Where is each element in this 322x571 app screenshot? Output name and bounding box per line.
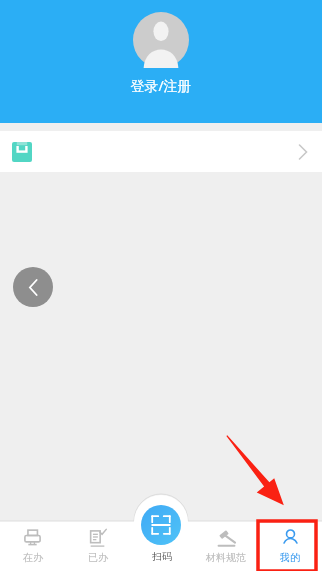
button[interactable]: 扫码 (130, 521, 194, 571)
button[interactable]: 我的 (258, 521, 322, 571)
staticText: 我的 (280, 551, 300, 564)
staticText: 已办 (88, 551, 108, 564)
button[interactable]: 在办 (0, 521, 65, 571)
button[interactable]: 已办 (65, 521, 130, 571)
button[interactable] (0, 131, 322, 172)
button[interactable]: 扫码 Scan (141, 505, 181, 545)
button[interactable]: Back (13, 267, 53, 307)
button[interactable]: 登录/注册 (130, 12, 192, 95)
staticText: 在办 (23, 551, 43, 564)
staticText: 材料规范 (206, 551, 246, 564)
button[interactable]: 材料规范 (194, 521, 258, 571)
staticText: 登录/注册 (130, 76, 192, 95)
staticText: 扫码 (152, 550, 172, 563)
